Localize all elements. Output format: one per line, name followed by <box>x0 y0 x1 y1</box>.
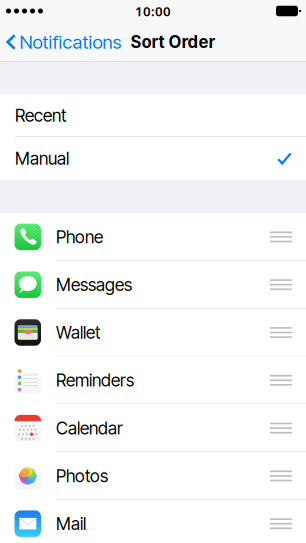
button[interactable]: Manual <box>0 137 306 180</box>
staticText: Notifications <box>19 31 121 53</box>
button[interactable]: Recent <box>0 94 306 137</box>
staticText: Recent <box>15 105 66 126</box>
staticText: Phone <box>56 226 103 247</box>
staticText: Photos <box>56 465 108 486</box>
staticText: Messages <box>56 274 132 295</box>
button[interactable]: Notifications <box>0 25 121 59</box>
staticText: Mail <box>56 513 86 534</box>
staticText: 10:00 <box>135 2 171 20</box>
staticText: Sort Order <box>130 32 215 52</box>
staticText: Wallet <box>56 322 100 343</box>
staticText: Reminders <box>56 370 134 391</box>
staticText: Calendar <box>56 418 123 439</box>
staticText: Manual <box>15 148 69 169</box>
